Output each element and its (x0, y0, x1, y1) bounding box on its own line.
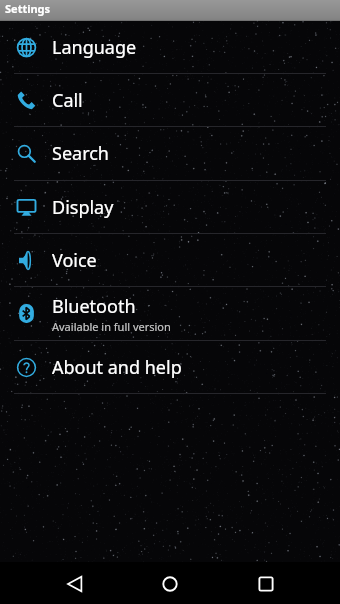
button[interactable]: Display (0, 181, 340, 234)
staticText: Display (52, 195, 114, 220)
button[interactable]: Search (0, 127, 340, 181)
staticText: Bluetooth (52, 294, 136, 319)
button[interactable]: Back (45, 563, 105, 604)
staticText: Language (52, 35, 137, 60)
button[interactable]: Home (140, 563, 200, 604)
button[interactable]: About and help (0, 341, 340, 394)
button[interactable]: Voice (0, 234, 340, 287)
staticText: Settings (5, 1, 51, 16)
staticText: About and help (52, 355, 182, 380)
staticText: Call (52, 88, 83, 113)
staticText: Available in full version (52, 319, 171, 334)
button[interactable]: Bluetooth (0, 287, 340, 341)
staticText: Voice (52, 248, 97, 273)
staticText: Search (52, 141, 109, 166)
button[interactable]: Call (0, 74, 340, 127)
button[interactable]: Recent apps (236, 563, 296, 604)
button[interactable]: Language (0, 21, 340, 74)
